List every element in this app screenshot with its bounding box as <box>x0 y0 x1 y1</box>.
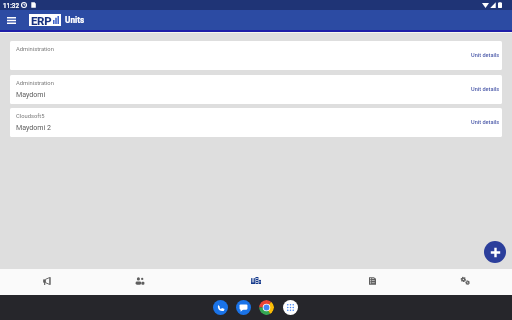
button[interactable]: People <box>94 269 186 296</box>
button[interactable]: Cloudsoft5 <box>10 108 502 137</box>
staticText: Unit details <box>471 119 500 126</box>
button[interactable]: Chrome <box>259 300 274 315</box>
button[interactable]: Unit details <box>466 82 502 97</box>
button[interactable]: Unit details <box>466 115 502 130</box>
staticText: ERP <box>31 14 52 26</box>
staticText: Maydomi 2 <box>16 123 52 131</box>
staticText: Unit details <box>471 86 500 93</box>
button[interactable]: Administration <box>10 41 502 70</box>
button[interactable]: Open navigation menu <box>0 10 22 30</box>
staticText: Unit details <box>471 52 500 59</box>
staticText: Administration <box>16 80 54 87</box>
button[interactable]: Unit details <box>466 48 502 63</box>
staticText: Cloudsoft5 <box>16 113 45 120</box>
button[interactable]: Administration <box>10 75 502 104</box>
button[interactable]: Messages <box>236 300 251 315</box>
button[interactable]: Announcements <box>0 269 94 296</box>
button[interactable]: Settings <box>418 269 512 296</box>
staticText: Administration <box>16 46 54 53</box>
button[interactable]: ERP home <box>29 14 61 26</box>
staticText: Maydomi <box>16 90 46 98</box>
button[interactable]: Add unit <box>484 241 506 263</box>
button[interactable]: Phone <box>213 300 228 315</box>
button[interactable]: All apps <box>283 300 298 315</box>
staticText: 11:32 <box>3 2 19 9</box>
button[interactable]: Documents <box>326 269 418 296</box>
staticText: Units <box>65 15 85 25</box>
button[interactable]: Units <box>186 269 326 296</box>
